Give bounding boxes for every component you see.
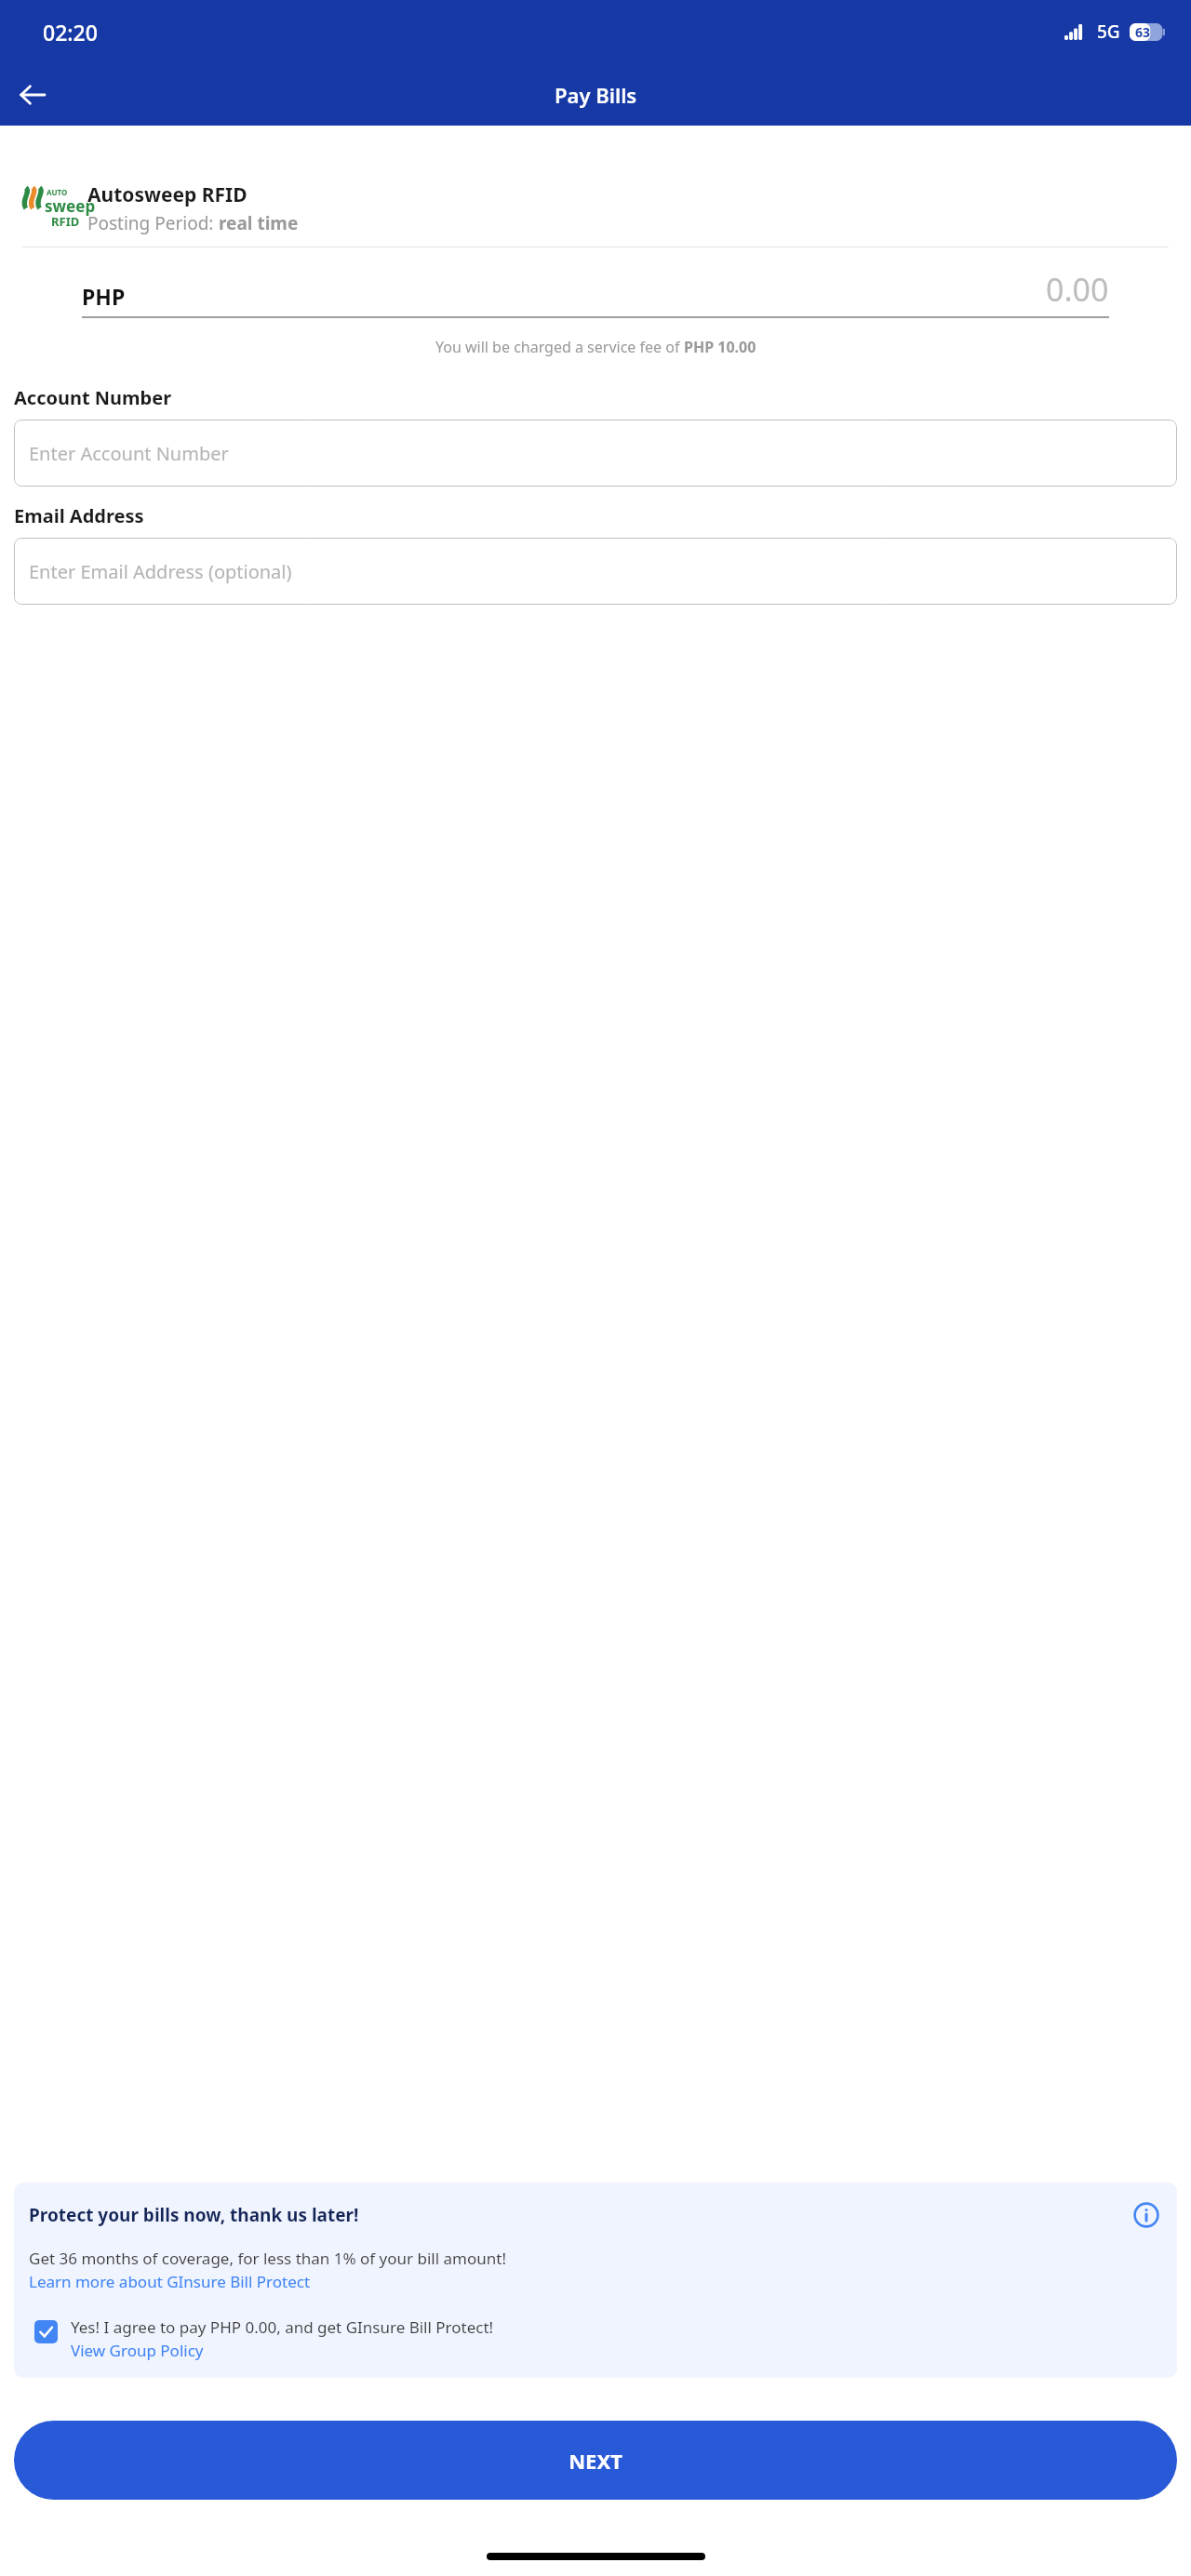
staticText: Enter Email Address (optional) <box>29 559 292 584</box>
staticText: 5G <box>1097 20 1120 44</box>
staticText: NEXT <box>569 2447 622 2475</box>
staticText: Pay Bills <box>555 81 637 109</box>
button[interactable]: View Group Policy <box>71 2340 204 2361</box>
staticText: sweep <box>45 195 96 217</box>
staticText: Autosweep RFID <box>87 181 248 208</box>
staticText: Account Number <box>14 385 172 410</box>
staticText: Email Address <box>14 503 144 528</box>
staticText: Protect your bills now, thank us later! <box>29 2203 359 2227</box>
staticText: You will be charged a service fee of <box>435 337 684 357</box>
button[interactable]: Back <box>11 73 54 116</box>
staticText: AUTO <box>47 187 68 197</box>
staticText: Posting Period: <box>87 211 219 235</box>
button[interactable]: Learn more about GInsure Bill Protect <box>29 2271 311 2292</box>
staticText: PHP 10.00 <box>684 337 756 357</box>
staticText: Get 36 months of coverage, for less than… <box>29 2248 506 2269</box>
button[interactable]: More information <box>1131 2199 1162 2231</box>
staticText: 0.00 <box>1046 268 1109 311</box>
staticText: Enter Account Number <box>29 441 229 466</box>
button[interactable]: Yes! I agree to pay PHP 0.00, and get GI… <box>29 2316 1162 2361</box>
staticText: PHP <box>82 282 126 311</box>
button[interactable]: Enter Email Address (optional) <box>14 538 1177 605</box>
button[interactable]: Enter Account Number <box>14 420 1177 487</box>
staticText: Yes! I agree to pay PHP 0.00, and get GI… <box>71 2316 494 2338</box>
staticText: real time <box>219 211 299 235</box>
staticText: RFID <box>51 213 80 230</box>
staticText: 02:20 <box>43 18 98 47</box>
staticText: 63 <box>1135 23 1151 41</box>
button[interactable]: NEXT <box>14 2421 1177 2500</box>
